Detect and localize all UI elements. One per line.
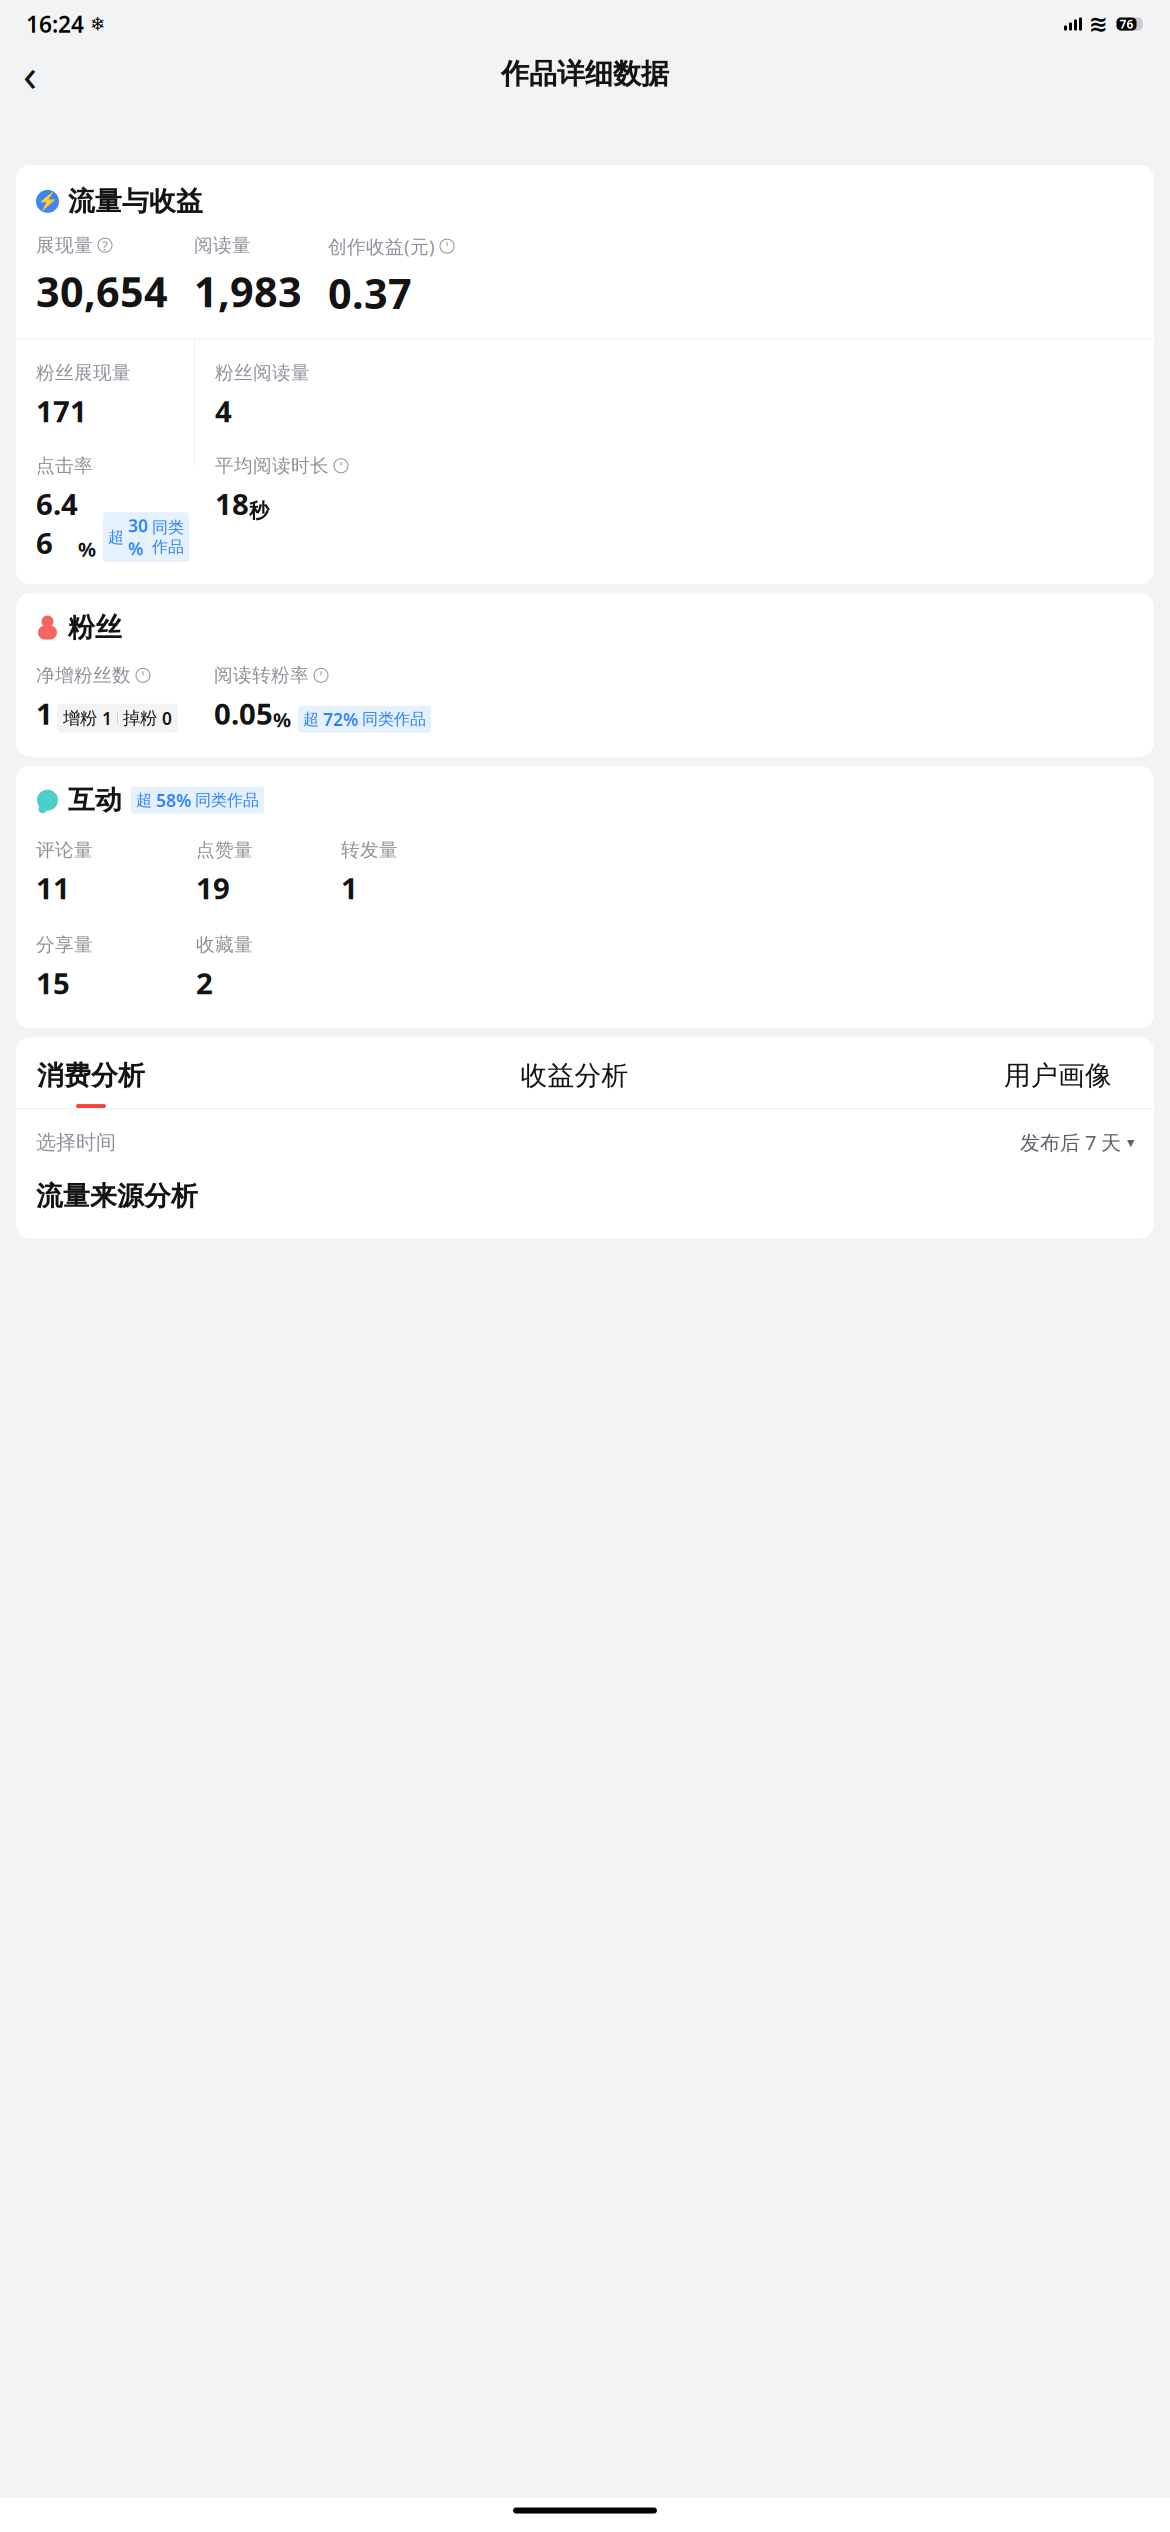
staticText: 粉丝阅读量 xyxy=(215,361,310,384)
staticText: 4 xyxy=(215,391,232,430)
staticText: 增粉 xyxy=(63,708,97,729)
staticText: 171 xyxy=(36,391,87,430)
staticText: 阅读量 xyxy=(194,234,251,257)
button[interactable]: 用户画像 xyxy=(996,1059,1120,1108)
button[interactable]: 选择时间 xyxy=(16,1109,1154,1176)
staticText: 消费分析 xyxy=(37,1059,145,1092)
staticText: 点击率 xyxy=(36,454,93,477)
staticText: 2 xyxy=(196,963,213,1002)
staticText: 1 xyxy=(102,707,112,730)
staticText: 分享量 xyxy=(36,933,93,956)
staticText: % xyxy=(273,706,291,733)
staticText: 11 xyxy=(36,868,70,907)
staticText: 16:24 xyxy=(26,9,84,39)
staticText: 净增粉丝数 xyxy=(36,664,131,687)
staticText: 同类作品 xyxy=(195,790,259,810)
staticText: 展现量 xyxy=(36,234,93,257)
staticText: ≋ xyxy=(1089,11,1108,37)
staticText: ‹ xyxy=(23,44,37,104)
staticText: 72% xyxy=(323,708,358,731)
staticText: 互动 xyxy=(68,784,122,817)
staticText: 30% xyxy=(128,514,148,560)
button[interactable]: 收益分析 xyxy=(512,1059,636,1108)
staticText: 15 xyxy=(36,963,70,1002)
staticText: ? xyxy=(102,236,108,254)
staticText: 评论量 xyxy=(36,838,93,861)
staticText: 点赞量 xyxy=(196,838,253,861)
staticText: 30,654 xyxy=(36,264,168,319)
staticText: 19 xyxy=(196,868,230,907)
staticText: 作品详细数据 xyxy=(501,57,669,91)
staticText: 6.46 xyxy=(36,484,78,562)
staticText: % xyxy=(78,536,96,562)
button[interactable]: 返回 xyxy=(8,52,52,96)
staticText: 发布后 7 天 xyxy=(1020,1129,1121,1156)
staticText: ❄ xyxy=(90,13,106,35)
staticText: 用户画像 xyxy=(1004,1059,1112,1092)
staticText: 粉丝展现量 xyxy=(36,361,131,384)
staticText: 创作收益(元) xyxy=(328,234,435,259)
staticText: 选择时间 xyxy=(36,1130,116,1155)
staticText: 平均阅读时长 xyxy=(215,454,329,477)
staticText: 同类作品 xyxy=(362,709,426,729)
staticText: 收藏量 xyxy=(196,933,253,956)
staticText: 阅读转粉率 xyxy=(214,664,309,687)
staticText: 58% xyxy=(156,789,191,812)
staticText: 0 xyxy=(162,707,172,730)
staticText: 1 xyxy=(341,868,358,907)
staticText: 76 xyxy=(1119,16,1133,32)
button[interactable]: 消费分析 xyxy=(29,1059,153,1108)
staticText: ⚡ xyxy=(36,191,58,211)
staticText: 0.37 xyxy=(328,265,412,320)
staticText: 转发量 xyxy=(341,838,398,861)
staticText: 同类作品 xyxy=(152,517,184,557)
staticText: 超 xyxy=(303,709,319,729)
staticText: 掉粉 xyxy=(123,708,157,729)
staticText: 流量与收益 xyxy=(68,185,203,218)
staticText: 流量来源分析 xyxy=(36,1180,198,1212)
staticText: 0.05 xyxy=(214,694,273,733)
staticText: 粉丝 xyxy=(68,611,122,644)
staticText: ▾ xyxy=(1127,1134,1134,1151)
staticText: 秒 xyxy=(249,499,269,523)
staticText: 1 xyxy=(36,694,53,733)
staticText: 超 xyxy=(108,527,124,547)
staticText: 收益分析 xyxy=(520,1059,628,1092)
staticText: 超 xyxy=(136,790,152,810)
staticText: 18 xyxy=(215,484,249,523)
staticText: 1,983 xyxy=(194,264,302,319)
